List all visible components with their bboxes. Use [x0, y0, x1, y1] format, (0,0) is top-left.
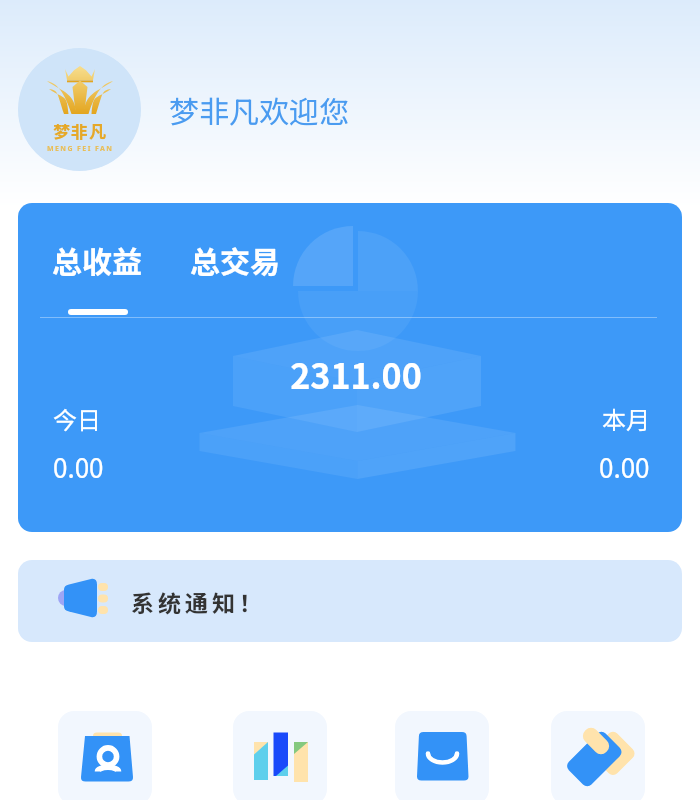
- staticText: 0.00: [599, 448, 650, 486]
- staticText: 系统通知！: [129, 585, 264, 618]
- button[interactable]: 总收益: [52, 238, 142, 281]
- staticText: 今日: [53, 401, 101, 436]
- staticText: 总收益: [52, 238, 142, 281]
- staticText: MENG FEI FAN: [47, 144, 114, 154]
- staticText: 总交易: [190, 238, 280, 281]
- staticText: 0.00: [53, 448, 104, 486]
- button[interactable]: 梦非凡: [18, 48, 349, 171]
- staticText: 梦非凡欢迎您: [169, 88, 349, 131]
- staticText: 2311.00: [24, 350, 682, 399]
- staticText: 本月: [602, 401, 650, 436]
- button[interactable]: 合作: [551, 711, 645, 800]
- button[interactable]: 数据: [233, 711, 327, 800]
- button[interactable]: 总交易: [190, 238, 280, 281]
- staticText: 梦非凡: [53, 118, 107, 143]
- button[interactable]: 商城: [395, 711, 489, 800]
- button[interactable]: 店铺: [58, 711, 152, 800]
- button[interactable]: 系统通知！: [18, 560, 682, 642]
